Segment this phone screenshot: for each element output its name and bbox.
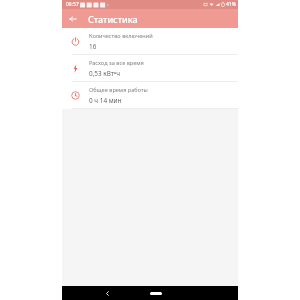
button[interactable]: Home (148, 289, 164, 297)
staticText: Общее время работы (89, 86, 148, 94)
staticText: 0,53 кВт•ч (89, 69, 121, 78)
button[interactable]: Расход за все время (62, 55, 238, 81)
staticText: 0 ч 14 мин (89, 96, 122, 105)
staticText: Статистика (88, 13, 138, 25)
staticText: 06:57 (66, 1, 79, 8)
button[interactable]: Back (102, 288, 112, 298)
staticText: 16 (89, 42, 97, 51)
button[interactable]: Общее время работы (62, 82, 238, 108)
staticText: Количество включений (89, 32, 153, 40)
button[interactable]: Back (65, 11, 81, 27)
staticText: 41% (226, 1, 236, 8)
staticText: Расход за все время (89, 59, 144, 67)
button[interactable]: Количество включений (62, 28, 238, 54)
